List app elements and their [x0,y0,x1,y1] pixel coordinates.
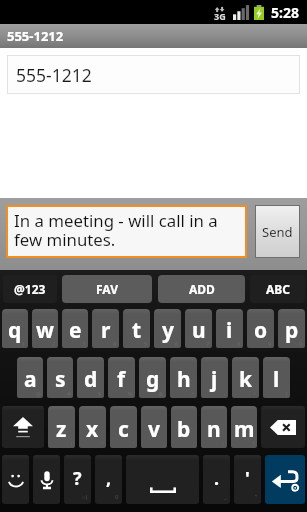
button[interactable]: i [216,309,243,348]
staticText: ( [286,390,288,397]
staticText: u [192,316,206,345]
staticText: j [211,365,218,394]
staticText: d [84,365,98,394]
staticText: y [162,316,174,345]
staticText: 0 [115,493,119,501]
staticText: 6 [175,340,179,347]
staticText: . [214,466,220,491]
button[interactable]: c [110,406,137,448]
staticText: o [254,316,268,345]
staticText: Send [262,223,293,241]
button[interactable]: b [171,406,197,448]
staticText: , [106,466,112,491]
button[interactable]: g [139,357,166,398]
staticText: n [207,415,221,444]
button[interactable]: f [108,357,135,398]
button[interactable]: @123 [3,275,57,303]
button[interactable]: x [79,406,106,448]
button[interactable]: y [154,309,181,348]
button[interactable]: ? [64,455,91,504]
button[interactable]: e [62,309,88,348]
button[interactable]: w [32,309,58,348]
button[interactable]: Emoji [2,455,29,504]
button[interactable]: m [231,406,257,448]
button[interactable]: v [141,406,167,448]
button[interactable]: h [170,357,197,398]
button[interactable]: l [263,357,290,398]
staticText: ? [73,466,82,491]
staticText: z [56,415,67,444]
staticText: h [177,365,191,394]
staticText: % [128,390,133,397]
staticText: f [117,365,126,394]
staticText: 5:28 [271,3,299,22]
button[interactable]: ADD [158,275,245,303]
staticText: 3G [214,10,226,22]
button[interactable]: FAV [62,275,152,303]
staticText: 8 [237,340,241,347]
staticText: i [226,316,233,345]
button[interactable]: Voice input [33,455,60,504]
button[interactable]: d [77,357,104,398]
button[interactable]: Enter [265,455,305,504]
button[interactable]: In a meeting - will call in a few minute… [8,207,245,256]
staticText: 3 [82,340,86,347]
button[interactable]: n [201,406,227,448]
button[interactable]: 555-1212 [7,55,300,94]
staticText: 4 [113,340,117,347]
staticText: ABC [266,281,290,297]
button[interactable]: k [232,357,259,398]
staticText: In a meeting - will call in a few minute… [14,209,218,251]
button[interactable]: Space [126,455,199,504]
button[interactable]: o [247,309,274,348]
staticText: m [234,415,255,444]
staticText: :-) [82,493,88,501]
staticText: 555-1212 [16,63,92,87]
staticText: ! [71,440,73,447]
staticText: 7 [206,340,210,347]
button[interactable]: Backspace [261,406,305,448]
button[interactable]: p [278,309,305,348]
button[interactable]: s [47,357,73,398]
staticText: v [148,415,160,444]
button[interactable]: t [123,309,150,348]
button[interactable]: ABC [250,275,305,303]
staticText: _ [224,493,227,501]
button[interactable]: Send [256,206,299,257]
staticText: g [146,365,160,394]
button[interactable]: q [2,309,28,348]
button[interactable]: , [95,455,122,504]
staticText: ' [245,466,250,491]
staticText: FAV [96,281,118,297]
staticText: t [132,316,142,345]
button[interactable]: Shift [2,406,44,448]
button[interactable]: u [185,309,212,348]
staticText: # [67,390,71,397]
staticText: " [255,493,258,501]
staticText: @123 [14,281,46,297]
staticText: 0 [299,340,303,347]
button[interactable]: a [17,357,43,398]
staticText: p [285,316,299,345]
button[interactable]: j [201,357,228,398]
button[interactable]: r [92,309,119,348]
button[interactable]: . [203,455,230,504]
button[interactable]: ' [234,455,261,504]
staticText: s [55,365,66,394]
staticText: k [239,365,253,394]
staticText: & [159,390,164,397]
button[interactable]: z [48,406,75,448]
staticText: x [86,415,99,444]
staticText: a [24,365,37,394]
staticText: $ [98,390,102,397]
staticText: ADD [189,281,215,297]
